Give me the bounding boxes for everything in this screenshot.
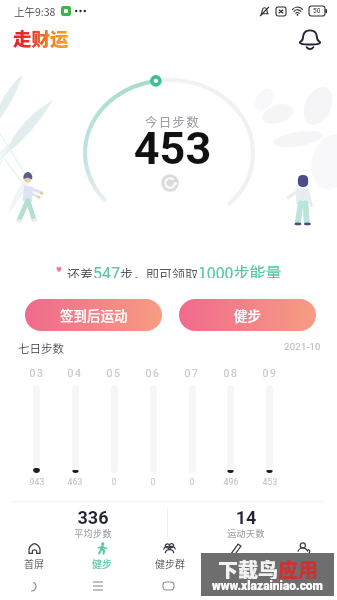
staticText: www.xlazainiao.com <box>201 579 334 593</box>
staticText: 03 <box>21 367 53 379</box>
staticText: 运动天数 <box>206 527 286 540</box>
staticText: 健步 <box>92 556 112 570</box>
staticText: 06 <box>137 367 169 379</box>
staticText: 0 <box>176 477 208 487</box>
staticText: 14 <box>206 507 286 528</box>
staticText: 453 <box>4 122 337 175</box>
staticText: 943 <box>21 477 53 487</box>
staticText: 09 <box>254 367 286 379</box>
staticText: 496 <box>215 477 247 487</box>
staticText: 走财运 <box>13 25 69 52</box>
button[interactable]: Recents <box>85 578 111 594</box>
staticText: 我 <box>299 556 309 570</box>
button[interactable]: 我 <box>270 541 337 570</box>
staticText: 还差547步，即可领取1000步能量 <box>67 260 282 278</box>
staticText: 463 <box>59 477 91 487</box>
staticText: 七日步数 <box>18 340 64 357</box>
staticText: 2021-10 <box>284 341 321 352</box>
staticText: 首屏 <box>24 556 44 570</box>
staticText: 下载鸟 <box>218 555 278 579</box>
button[interactable]: Home <box>155 578 181 594</box>
staticText: 0 <box>137 477 169 487</box>
staticText: 上午9:38 <box>14 4 56 19</box>
button[interactable]: 健步 <box>68 541 136 570</box>
staticText: 签到后运动 <box>60 305 128 325</box>
button[interactable]: 健步群 <box>136 541 203 570</box>
button[interactable]: 运动记录 <box>203 541 270 570</box>
button[interactable]: Notifications <box>294 24 326 56</box>
staticText: 0 <box>98 477 130 487</box>
staticText: 07 <box>176 367 208 379</box>
staticText: 应用 <box>278 555 318 579</box>
button[interactable]: 健步 <box>179 299 316 331</box>
staticText: 平均步数 <box>53 527 133 540</box>
staticText: 336 <box>53 507 133 528</box>
staticText: 今日步数 <box>4 112 337 130</box>
staticText: 08 <box>215 367 247 379</box>
button[interactable]: Refresh <box>161 174 179 192</box>
staticText: 健步群 <box>155 556 185 570</box>
staticText: 健步 <box>234 305 261 325</box>
staticText: 05 <box>98 367 130 379</box>
staticText: 50 <box>313 7 321 15</box>
button[interactable]: Back <box>18 578 44 594</box>
staticText: 运动记录 <box>217 556 257 570</box>
button[interactable]: 签到后运动 <box>25 299 162 331</box>
staticText: 04 <box>59 367 91 379</box>
button[interactable]: 首屏 <box>0 541 68 570</box>
staticText: 453 <box>254 477 286 487</box>
